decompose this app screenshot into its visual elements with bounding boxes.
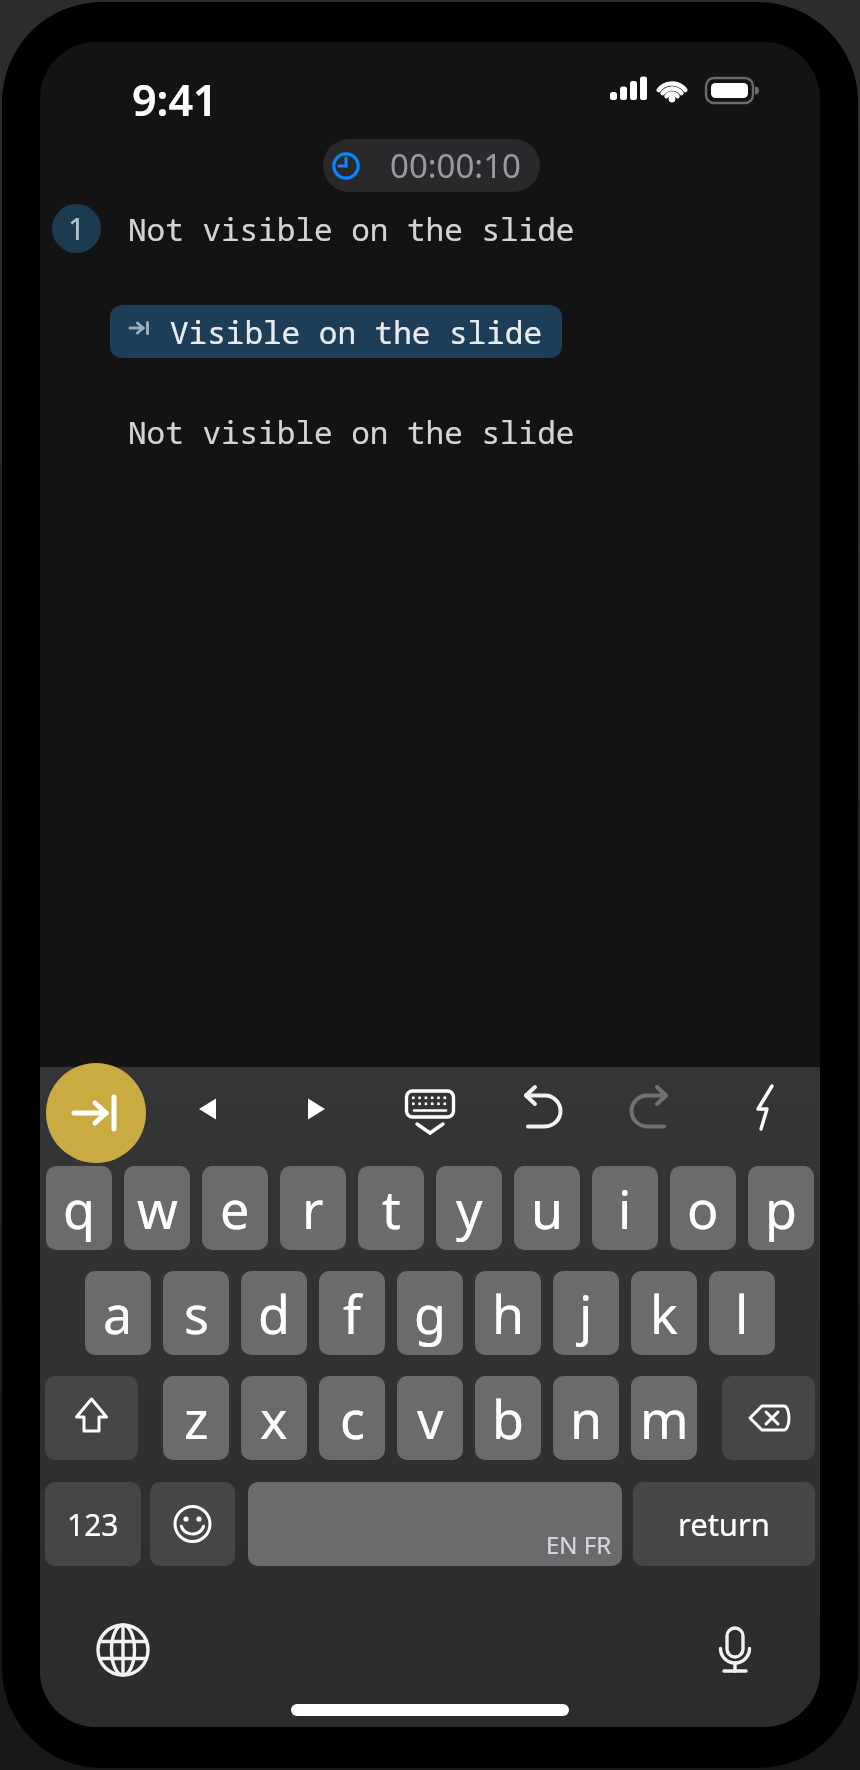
staticText: r: [302, 1173, 324, 1244]
staticText: v: [417, 1383, 444, 1454]
staticText: 00:00:10: [390, 143, 521, 188]
button[interactable]: [46, 1063, 146, 1163]
staticText: Not visible on the slide: [128, 208, 575, 250]
staticText: 9:41: [132, 70, 218, 120]
button[interactable]: t: [358, 1166, 424, 1250]
staticText: d: [258, 1278, 290, 1349]
button[interactable]: p: [748, 1166, 814, 1250]
staticText: k: [650, 1278, 678, 1349]
staticText: e: [220, 1173, 250, 1244]
button[interactable]: s: [163, 1271, 229, 1355]
button[interactable]: [271, 1067, 361, 1151]
staticText: z: [184, 1383, 209, 1454]
staticText: y: [456, 1173, 483, 1244]
button[interactable]: z: [163, 1376, 229, 1460]
button[interactable]: [607, 1068, 697, 1152]
staticText: p: [765, 1173, 797, 1244]
staticText: j: [579, 1278, 593, 1349]
staticText: i: [618, 1173, 632, 1244]
button[interactable]: m: [631, 1376, 697, 1460]
staticText: h: [492, 1278, 525, 1349]
button[interactable]: h: [475, 1271, 541, 1355]
button[interactable]: x: [241, 1376, 307, 1460]
staticText: s: [184, 1278, 209, 1349]
button[interactable]: r: [280, 1166, 346, 1250]
staticText: return: [678, 1503, 770, 1545]
staticText: o: [687, 1173, 719, 1244]
button[interactable]: [163, 1067, 253, 1151]
staticText: n: [570, 1383, 603, 1454]
staticText: b: [492, 1383, 524, 1454]
staticText: u: [531, 1173, 564, 1244]
button[interactable]: k: [631, 1271, 697, 1355]
staticText: EN FR: [546, 1528, 612, 1561]
button[interactable]: g: [397, 1271, 463, 1355]
button[interactable]: q: [46, 1166, 112, 1250]
button[interactable]: i: [592, 1166, 658, 1250]
button[interactable]: o: [670, 1166, 736, 1250]
staticText: t: [382, 1173, 401, 1244]
staticText: g: [414, 1278, 446, 1349]
staticText: l: [735, 1278, 749, 1349]
staticText: m: [640, 1383, 689, 1454]
button[interactable]: d: [241, 1271, 307, 1355]
button[interactable]: w: [124, 1166, 190, 1250]
button[interactable]: Visible on the slide: [110, 305, 562, 358]
button[interactable]: y: [436, 1166, 502, 1250]
button[interactable]: EN FR: [248, 1482, 622, 1566]
button[interactable]: [83, 1610, 163, 1690]
staticText: w: [137, 1173, 178, 1244]
button[interactable]: [385, 1067, 475, 1151]
button[interactable]: [721, 1066, 811, 1150]
button[interactable]: [150, 1482, 235, 1566]
staticText: Not visible on the slide: [128, 411, 575, 453]
staticText: f: [343, 1278, 361, 1349]
staticText: Visible on the slide: [170, 311, 542, 353]
staticText: q: [63, 1173, 95, 1244]
staticText: a: [103, 1278, 133, 1349]
button[interactable]: [695, 1610, 775, 1690]
button[interactable]: b: [475, 1376, 541, 1460]
button[interactable]: a: [85, 1271, 151, 1355]
staticText: x: [260, 1383, 288, 1454]
button[interactable]: u: [514, 1166, 580, 1250]
button[interactable]: return: [633, 1482, 815, 1566]
button[interactable]: n: [553, 1376, 619, 1460]
staticText: c: [340, 1383, 365, 1454]
button[interactable]: [495, 1068, 585, 1152]
button[interactable]: v: [397, 1376, 463, 1460]
button[interactable]: l: [709, 1271, 775, 1355]
button[interactable]: f: [319, 1271, 385, 1355]
button[interactable]: j: [553, 1271, 619, 1355]
button[interactable]: 123: [45, 1482, 141, 1566]
staticText: 1: [68, 208, 86, 249]
button[interactable]: [45, 1376, 138, 1460]
button[interactable]: 00:00:10: [323, 139, 540, 192]
button[interactable]: c: [319, 1376, 385, 1460]
button[interactable]: e: [202, 1166, 268, 1250]
staticText: 123: [67, 1504, 119, 1545]
button[interactable]: [722, 1376, 815, 1460]
